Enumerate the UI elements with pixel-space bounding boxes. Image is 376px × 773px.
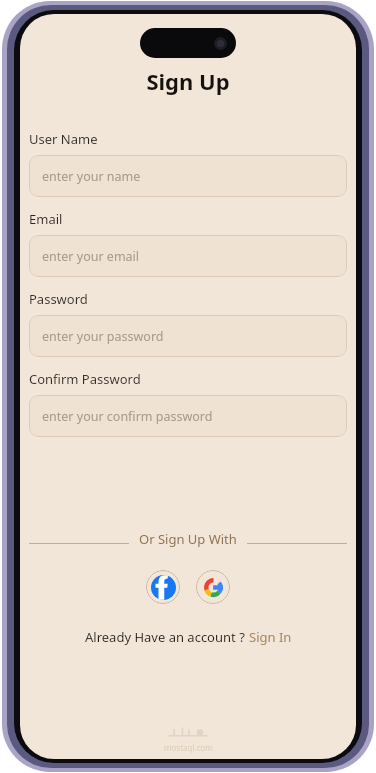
staticText: enter your email [42,248,140,265]
staticText: Email [29,210,63,228]
staticText: Password [29,290,88,308]
button[interactable]: enter your name [29,155,347,197]
staticText: enter your name [42,168,141,185]
staticText: User Name [29,130,98,148]
staticText: Already Have an account ? [85,628,249,646]
staticText: Sign Up [146,66,230,96]
button[interactable]: enter your confirm password [29,395,347,437]
staticText: enter your confirm password [42,408,213,425]
button[interactable]: Sign up with Google [196,570,230,604]
staticText: Sign In [249,628,292,646]
staticText: enter your password [42,328,164,345]
staticText: Or Sign Up With [139,530,237,548]
staticText: mostaql.com [164,742,213,753]
button[interactable]: Sign In [249,628,292,646]
button[interactable]: enter your password [29,315,347,357]
button[interactable]: enter your email [29,235,347,277]
staticText: Confirm Password [29,370,141,388]
button[interactable]: Sign up with Facebook [146,570,180,604]
